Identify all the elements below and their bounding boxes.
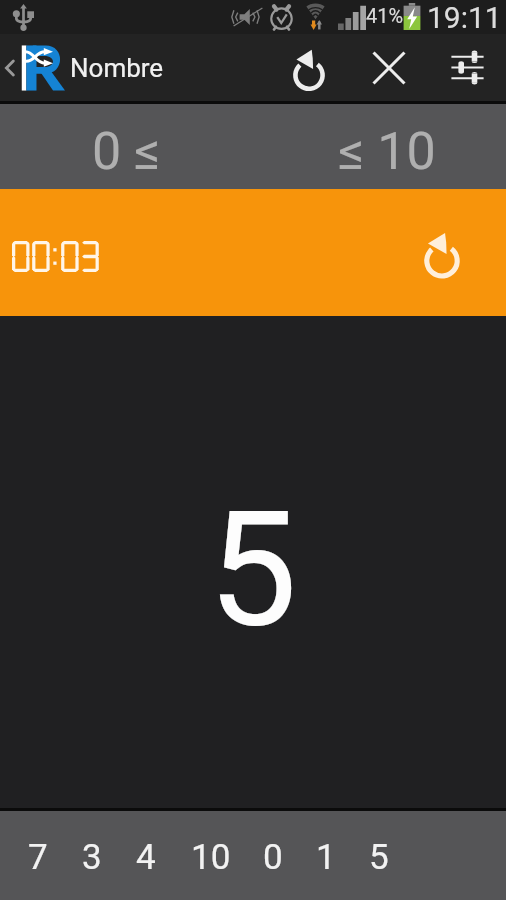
button[interactable]: Refresh (275, 34, 343, 101)
staticText: 41% (366, 4, 404, 27)
staticText: Nombre (70, 53, 164, 83)
button[interactable]: 7 (12, 815, 64, 900)
staticText: 7 (28, 837, 48, 878)
button[interactable]: Navigate up – Nombre (0, 34, 176, 101)
staticText: 0 (263, 837, 283, 878)
button[interactable]: 5 (0, 316, 506, 808)
staticText: 3 (82, 837, 102, 878)
button[interactable]: ≤ 10 (253, 104, 506, 189)
button[interactable]: 1 (300, 815, 352, 900)
staticText: 5 (208, 476, 298, 662)
button[interactable]: 3 (66, 815, 118, 900)
button[interactable]: Settings (433, 34, 501, 101)
staticText: 0 ≤ (92, 121, 161, 182)
button[interactable]: 5 (353, 815, 405, 900)
button[interactable]: Restart timer (0, 189, 506, 316)
button[interactable]: Restart timer (413, 225, 471, 283)
button[interactable]: 0 (247, 815, 299, 900)
button[interactable]: Close (355, 34, 423, 101)
staticText: 19:11 (427, 0, 502, 34)
staticText: 1 (316, 837, 336, 878)
staticText: 5 (369, 837, 389, 878)
button[interactable]: 10 (185, 815, 237, 900)
button[interactable]: 4 (120, 815, 172, 900)
staticText: 10 (191, 837, 231, 878)
staticText: ≤ 10 (338, 121, 436, 182)
staticText: 4 (136, 837, 156, 878)
button[interactable]: 0 ≤ (0, 104, 253, 189)
